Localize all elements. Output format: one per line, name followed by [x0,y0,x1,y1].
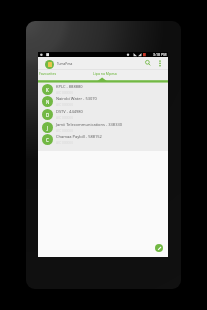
staticText: Chamaa Paybill - 588152 [56,134,102,139]
staticText: A/C 000000 [56,116,74,120]
button[interactable]: K [38,83,168,96]
button[interactable]: New transaction [155,244,163,252]
staticText: 3:18 PM [153,52,167,57]
staticText: A/C 000000 [56,141,74,145]
staticText: A/C 000000 [56,103,74,107]
staticText: Favourites [39,71,57,76]
button[interactable]: C [38,133,168,146]
staticText: C [46,137,49,143]
button[interactable]: J [38,121,168,134]
staticText: Nairobi Water - 53070 [56,96,97,101]
button[interactable]: More options [154,57,166,69]
staticText: TumaPesa [57,62,73,66]
button[interactable]: Search [142,57,154,69]
staticText: K [46,87,49,93]
staticText: D [46,112,50,118]
staticText: Lipa na Mpesa [93,71,117,76]
button[interactable] [90,69,146,81]
staticText: DSTV - 444980 [56,109,83,114]
staticText: J [47,125,49,131]
button[interactable] [38,69,90,81]
staticText: A/C 000000 [56,91,74,95]
staticText: KPLC - 888880 [56,84,83,89]
button[interactable]: D [38,108,168,121]
button[interactable]: N [38,95,168,108]
staticText: N [46,99,50,105]
staticText: Jamii Telecommunications - 338330 [56,122,123,127]
staticText: A/C 000000 [56,129,74,133]
